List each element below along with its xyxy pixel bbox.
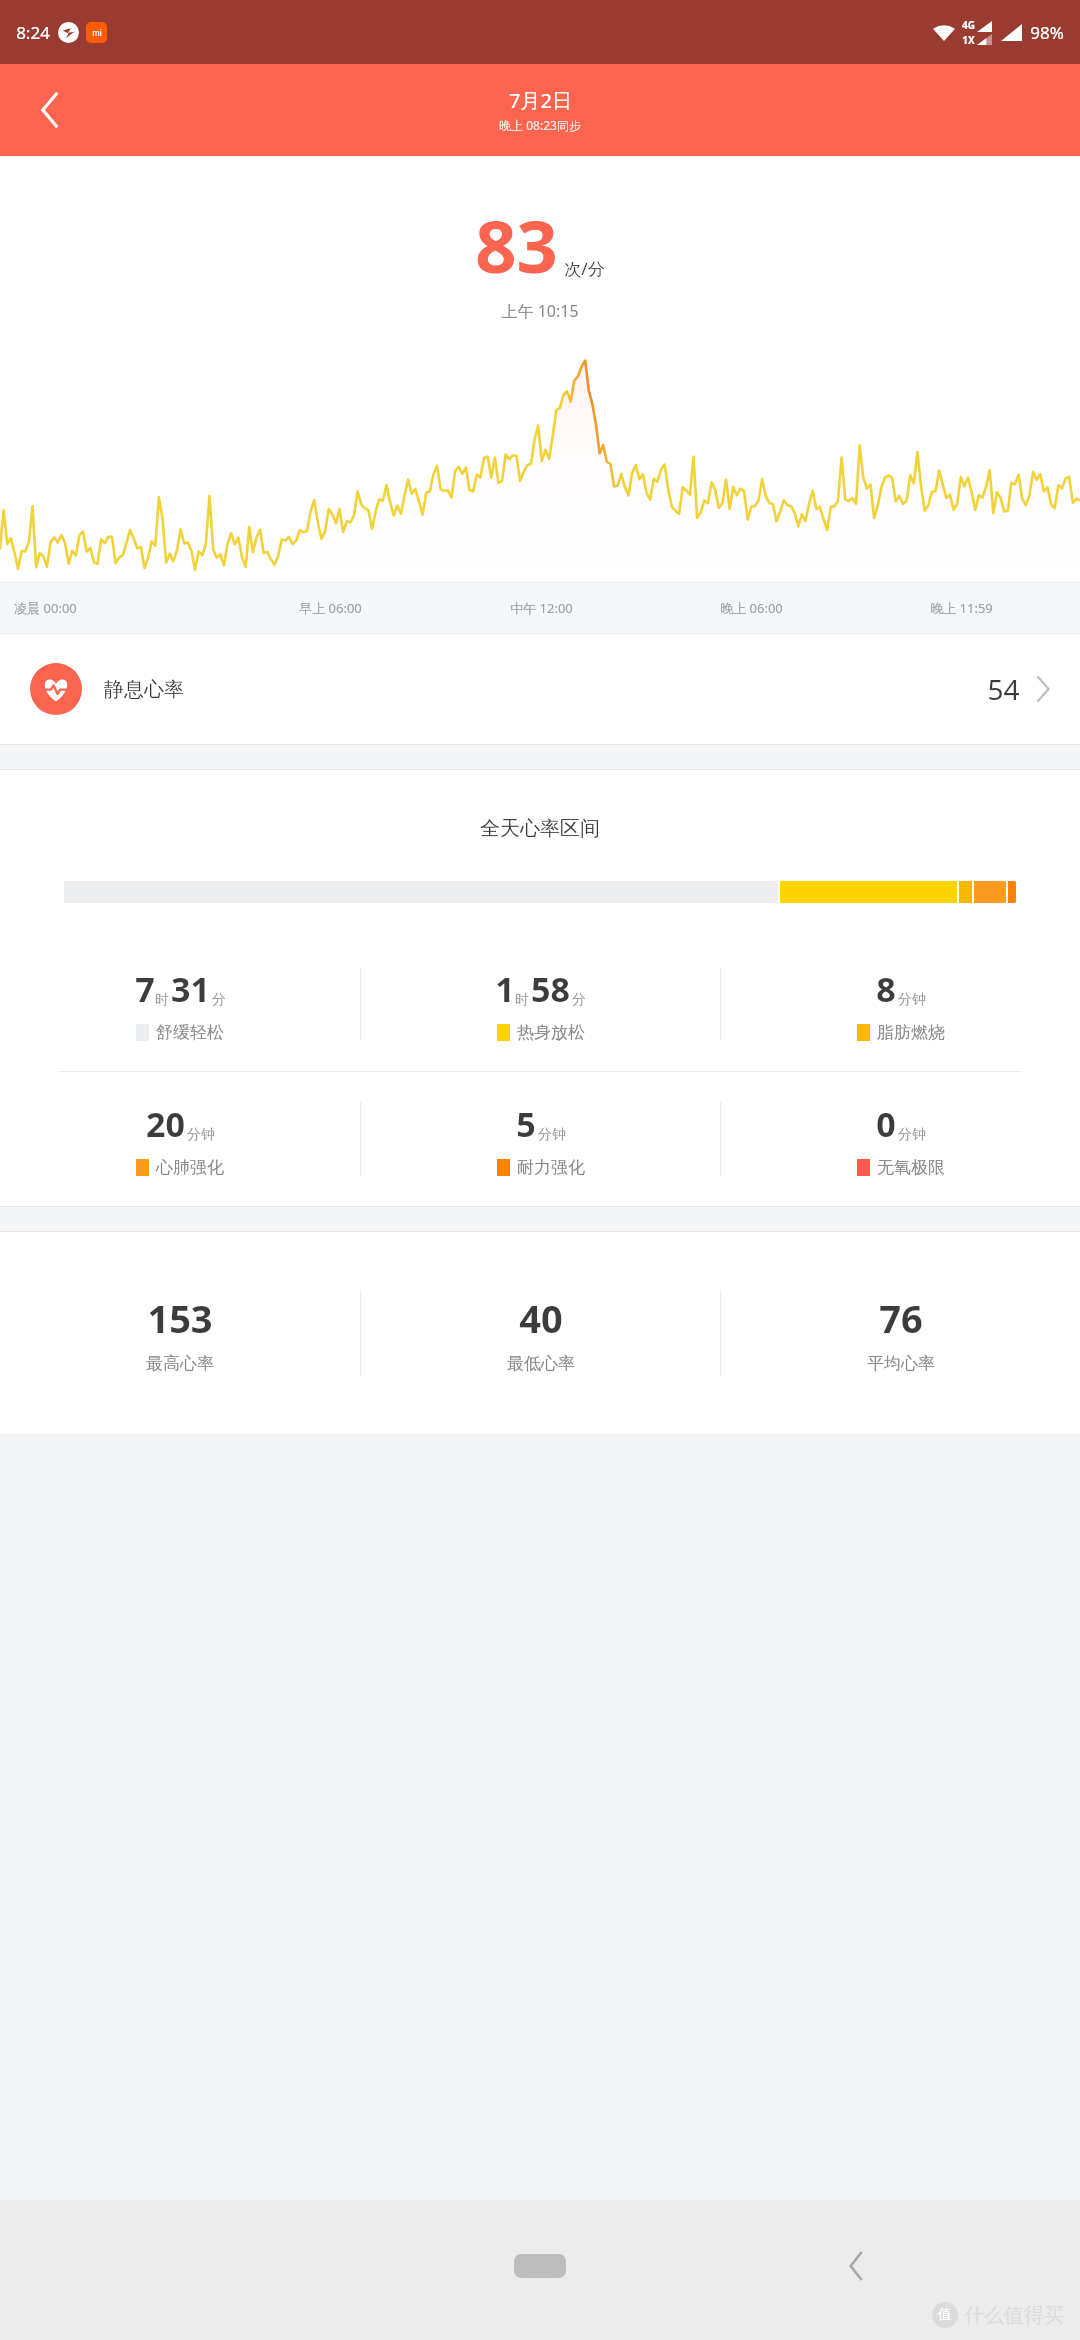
staticText: 平均心率 <box>867 1353 935 1374</box>
staticText: 舒缓轻松 <box>156 1022 224 1043</box>
staticText: 分 <box>572 991 586 1009</box>
staticText: 时 <box>515 991 529 1009</box>
button[interactable]: Back <box>22 82 78 138</box>
staticText: 分钟 <box>898 991 926 1009</box>
staticText: 无氧极限 <box>877 1157 945 1178</box>
staticText: 153 <box>147 1292 213 1344</box>
staticText: 心肺强化 <box>156 1157 224 1178</box>
staticText: 1X <box>962 33 975 47</box>
button[interactable]: Home <box>501 2251 579 2281</box>
button[interactable]: 40 <box>361 1232 720 1434</box>
staticText: 98% <box>1030 21 1064 44</box>
staticText: 晚上 11:59 <box>930 599 993 617</box>
staticText: 热身放松 <box>517 1022 585 1043</box>
staticText: mi <box>92 27 102 38</box>
staticText: 分 <box>212 991 226 1009</box>
staticText: 全天心率区间 <box>480 816 600 841</box>
staticText: 8:24 <box>16 21 50 44</box>
button[interactable]: 0 <box>721 1072 1080 1206</box>
button[interactable]: 静息心率 <box>0 634 1080 744</box>
staticText: 耐力强化 <box>517 1157 585 1178</box>
staticText: 凌晨 00:00 <box>14 599 77 617</box>
staticText: 最高心率 <box>146 1353 214 1374</box>
staticText: 分钟 <box>898 1126 926 1144</box>
staticText: 晚上 06:00 <box>720 599 783 617</box>
staticText: 54 <box>987 670 1020 708</box>
staticText: 31 <box>171 966 210 1012</box>
button[interactable]: 7 <box>0 937 360 1071</box>
staticText: 7 <box>135 966 155 1012</box>
staticText: 83 <box>475 196 558 294</box>
button[interactable]: 20 <box>0 1072 360 1206</box>
staticText: 次/分 <box>564 257 605 280</box>
staticText: 早上 06:00 <box>299 599 362 617</box>
button[interactable]: 1 <box>361 937 720 1071</box>
staticText: 分钟 <box>187 1126 215 1144</box>
staticText: 脂肪燃烧 <box>877 1022 945 1043</box>
staticText: 76 <box>879 1292 923 1344</box>
staticText: 分钟 <box>538 1126 566 1144</box>
staticText: 什么值得买 <box>964 2303 1064 2328</box>
staticText: 1 <box>495 966 515 1012</box>
staticText: 40 <box>519 1292 563 1344</box>
button[interactable]: 8 <box>721 937 1080 1071</box>
staticText: 静息心率 <box>104 677 184 702</box>
staticText: 晚上 08:23同步 <box>499 117 581 133</box>
staticText: 最低心率 <box>507 1353 575 1374</box>
staticText: 4G <box>962 18 975 32</box>
button[interactable]: 153 <box>0 1232 360 1434</box>
button[interactable]: Back <box>832 2242 880 2290</box>
staticText: 上午 10:15 <box>501 300 579 322</box>
staticText: 7月2日 <box>509 87 572 114</box>
button[interactable]: 76 <box>721 1232 1080 1434</box>
staticText: 中午 12:00 <box>510 599 573 617</box>
staticText: 5 <box>516 1101 536 1147</box>
staticText: 8 <box>876 966 896 1012</box>
staticText: 0 <box>876 1101 896 1147</box>
staticText: 值 <box>938 2306 952 2324</box>
staticText: 20 <box>146 1101 185 1147</box>
staticText: 58 <box>531 966 570 1012</box>
button[interactable]: 5 <box>361 1072 720 1206</box>
staticText: 时 <box>155 991 169 1009</box>
